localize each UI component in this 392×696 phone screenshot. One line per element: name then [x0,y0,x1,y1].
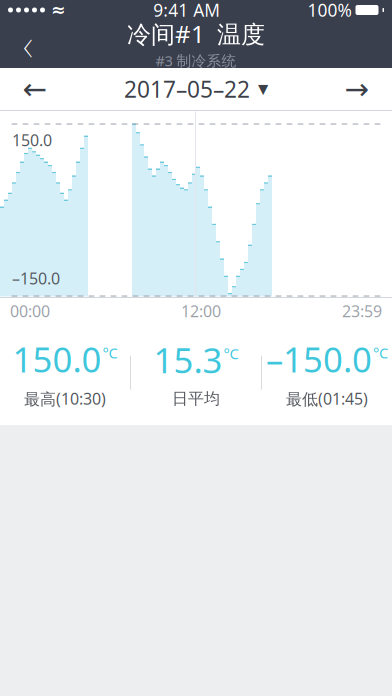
staticText: 冷间#1 温度 [127,18,265,50]
button[interactable]: Previous day [0,68,70,110]
staticText: °C [102,343,117,362]
staticText: 最低(01:45) [286,388,368,409]
staticText: –150.0 [12,268,60,289]
button[interactable]: Back [0,20,56,68]
staticText: ← [22,72,47,106]
staticText: 150.0 [12,336,101,382]
staticText: °C [223,344,238,363]
button[interactable]: 2017–05–22 [124,68,268,110]
staticText: 2017–05–22 [124,74,250,104]
staticText: → [344,72,369,106]
staticText: 23:59 [342,300,382,322]
staticText: 15.3 [153,337,222,383]
staticText: ‹ [23,14,33,74]
staticText: ≈ [51,0,66,20]
staticText: –150.0 [266,336,372,382]
staticText: 100% [307,0,351,21]
staticText: #3 制冷系统 [155,51,236,70]
button[interactable]: Next day [322,68,392,110]
staticText: 9:41 AM [153,0,220,21]
staticText: 日平均 [172,389,220,408]
staticText: 150.0 [12,129,52,151]
staticText: 12:00 [181,300,221,322]
staticText: °C [373,343,388,362]
staticText: 最高(10:30) [24,388,106,409]
staticText: ▼ [258,81,268,96]
staticText: 00:00 [10,300,50,322]
